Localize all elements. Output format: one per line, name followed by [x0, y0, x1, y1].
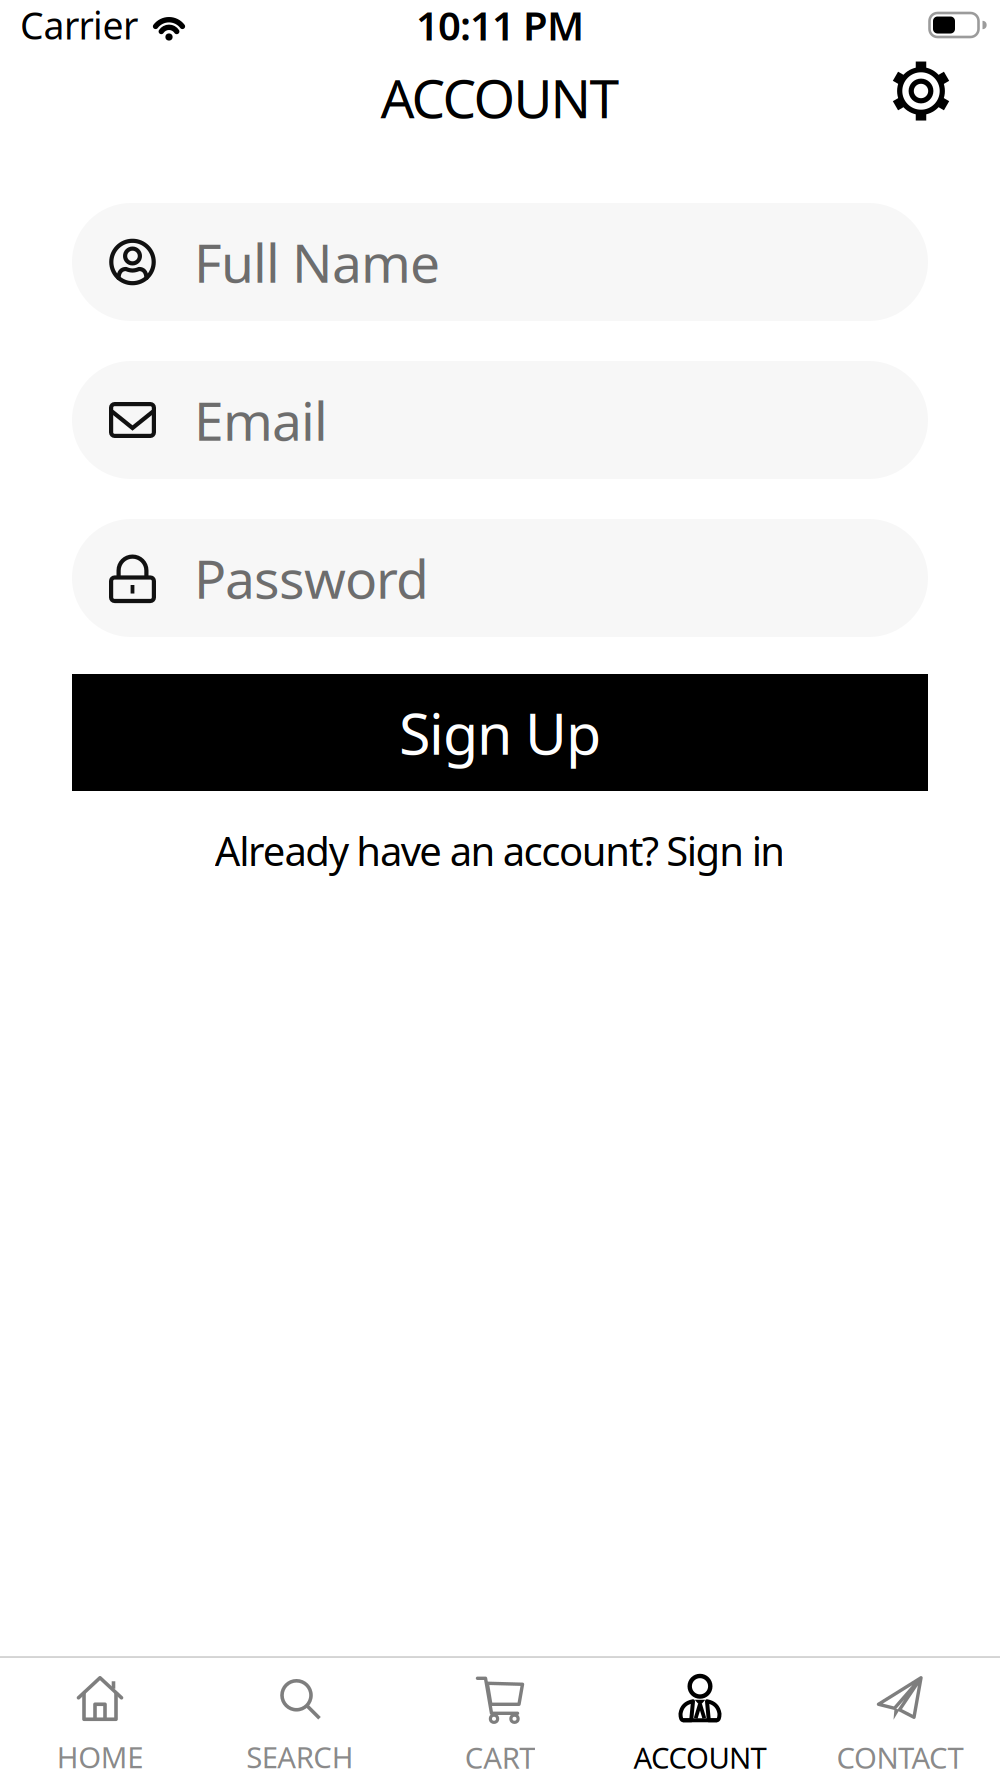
- button[interactable]: Settings: [892, 62, 950, 120]
- staticText: Password: [194, 543, 429, 613]
- button[interactable]: Sign Up: [72, 674, 928, 791]
- button[interactable]: ACCOUNT: [600, 1675, 800, 1777]
- button[interactable]: SEARCH: [200, 1675, 400, 1776]
- button[interactable]: CONTACT: [800, 1675, 1000, 1777]
- staticText: Email: [194, 385, 328, 455]
- button[interactable]: Already have an account? Sign in: [215, 824, 785, 877]
- staticText: CART: [465, 1738, 535, 1777]
- staticText: ACCOUNT: [380, 62, 619, 133]
- button[interactable]: Email: [72, 361, 928, 479]
- staticText: ACCOUNT: [633, 1738, 766, 1777]
- button[interactable]: Password: [72, 519, 928, 637]
- staticText: 10:11 PM: [416, 0, 584, 51]
- button[interactable]: Full Name: [72, 203, 928, 321]
- staticText: Carrier: [20, 0, 138, 50]
- button[interactable]: HOME: [0, 1675, 200, 1776]
- staticText: CONTACT: [836, 1738, 963, 1777]
- staticText: HOME: [57, 1737, 143, 1776]
- staticText: Already have an account? Sign in: [215, 824, 785, 877]
- staticText: Full Name: [194, 227, 440, 297]
- button[interactable]: CART: [400, 1675, 600, 1777]
- staticText: Sign Up: [399, 694, 601, 770]
- staticText: SEARCH: [246, 1737, 354, 1776]
